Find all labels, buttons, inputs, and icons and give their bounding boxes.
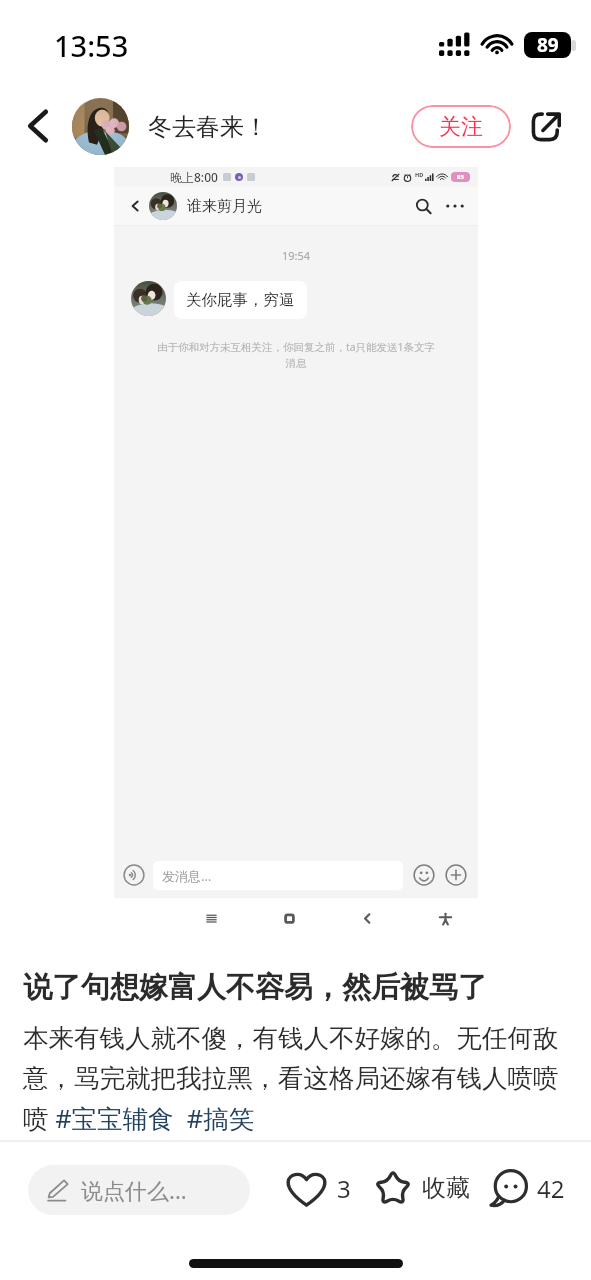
button[interactable]: 收藏: [373, 1168, 470, 1208]
staticText: 晚上8:00: [170, 169, 218, 185]
staticText: 关注: [439, 113, 483, 141]
button[interactable]: 3: [287, 1170, 351, 1207]
button[interactable]: Back: [18, 106, 58, 146]
staticText: 说了句想嫁富人不容易，然后被骂了: [23, 969, 487, 1006]
staticText: 13:53: [54, 26, 129, 65]
staticText: 19:54: [114, 248, 478, 263]
staticText: 85: [457, 173, 464, 181]
staticText: HD: [415, 171, 424, 178]
staticText: 89: [537, 32, 559, 58]
staticText: 发消息…: [162, 867, 212, 885]
button[interactable]: 说点什么...: [28, 1165, 250, 1215]
staticText: 本来有钱人就不傻，有钱人不好嫁的。无任何敌意，骂完就把我拉黑，看这格局还嫁有钱人…: [23, 1022, 577, 1136]
staticText: 42: [537, 1172, 565, 1205]
button[interactable]: Share: [525, 104, 569, 148]
staticText: 谁来剪月光: [187, 197, 262, 216]
staticText: 由于你和对方未互相关注，你回复之前，ta只能发送1条文字 消息: [138, 340, 454, 370]
staticText: 3: [337, 1172, 351, 1205]
button[interactable]: 关注: [411, 105, 511, 148]
button[interactable]: 冬去春来！: [72, 98, 268, 155]
button[interactable]: 42: [489, 1169, 565, 1208]
staticText: 关你屁事，穷逼: [186, 290, 295, 310]
staticText: 冬去春来！: [148, 112, 268, 142]
staticText: 收藏: [422, 1173, 470, 1203]
staticText: 说点什么...: [81, 1175, 187, 1205]
